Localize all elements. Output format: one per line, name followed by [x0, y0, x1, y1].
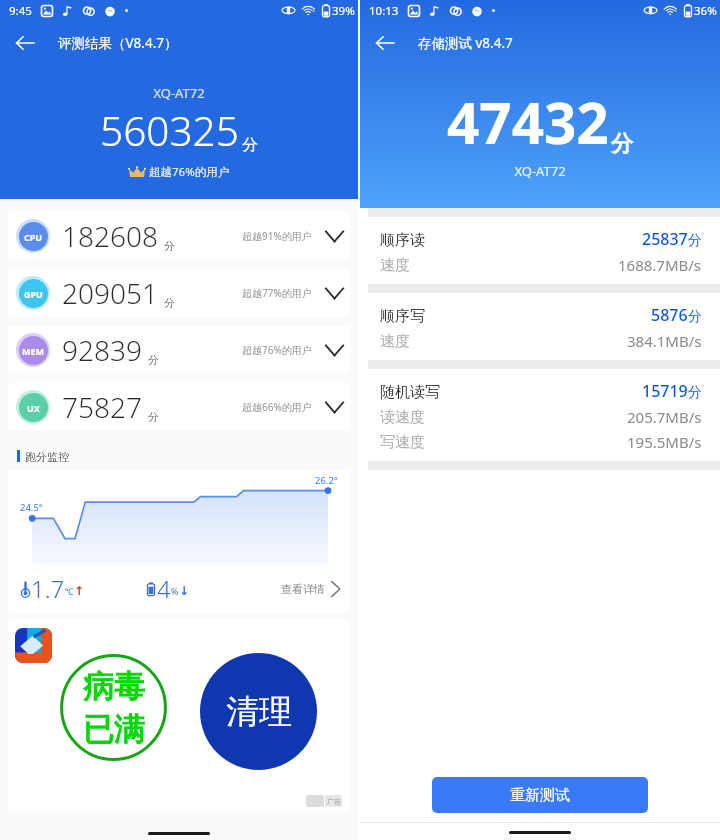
staticText: 分: [688, 384, 702, 402]
staticText: 写速度: [380, 433, 425, 452]
staticText: 195.5MB/s: [627, 432, 702, 452]
staticText: 顺序写: [380, 307, 425, 326]
button[interactable]: Back: [9, 27, 41, 59]
staticText: 182608: [62, 217, 158, 255]
button[interactable]: 重新测试: [432, 777, 648, 813]
staticText: 36%: [694, 3, 717, 19]
staticText: ↓: [179, 584, 190, 598]
staticText: 9:45: [9, 3, 32, 19]
staticText: 评测结果（V8.4.7）: [58, 34, 178, 52]
staticText: 24.5°: [20, 501, 43, 514]
staticText: 读速度: [380, 408, 425, 427]
button[interactable]: 随机读写: [360, 369, 720, 461]
staticText: UX: [27, 402, 40, 414]
staticText: 分: [688, 232, 702, 250]
staticText: ℃: [65, 585, 74, 597]
staticText: 47432: [447, 84, 609, 161]
button[interactable]: Back: [369, 27, 401, 59]
staticText: 26.2°: [315, 474, 338, 487]
staticText: 速度: [380, 256, 410, 275]
staticText: 75827: [62, 388, 142, 426]
button[interactable]: 病毒: [8, 620, 350, 811]
staticText: 分: [688, 308, 702, 326]
staticText: 速度: [380, 332, 410, 351]
staticText: MEM: [22, 345, 45, 357]
staticText: 清理: [226, 691, 292, 733]
staticText: 重新测试: [510, 786, 570, 805]
staticText: 92839: [62, 331, 142, 369]
staticText: 顺序读: [380, 231, 425, 250]
staticText: 分: [164, 239, 175, 253]
staticText: 存储测试 v8.4.7: [418, 34, 513, 52]
staticText: 5876: [651, 304, 688, 326]
staticText: 查看详情: [281, 582, 325, 596]
staticText: 随机读写: [380, 383, 440, 402]
staticText: 超越77%的用户: [242, 286, 312, 300]
staticText: 209051: [62, 274, 158, 312]
staticText: 10:13: [369, 3, 399, 19]
staticText: XQ-AT72: [0, 84, 358, 102]
staticText: %: [171, 585, 179, 597]
button[interactable]: 顺序读: [360, 217, 720, 284]
staticText: ↑: [74, 584, 85, 598]
staticText: 4: [157, 572, 171, 605]
staticText: 分: [148, 353, 159, 367]
staticText: 病毒: [83, 667, 145, 706]
staticText: 分: [164, 296, 175, 310]
button[interactable]: 顺序写: [360, 293, 720, 360]
button[interactable]: 查看详情: [281, 580, 344, 598]
staticText: 1.7: [31, 572, 65, 605]
button[interactable]: MEM: [8, 326, 350, 373]
staticText: 已满: [83, 710, 145, 749]
button[interactable]: CPU: [8, 212, 350, 259]
staticText: 39%: [332, 3, 355, 19]
staticText: 广告: [327, 797, 341, 806]
staticText: XQ-AT72: [360, 162, 720, 180]
staticText: 分: [242, 135, 258, 155]
staticText: 超越91%的用户: [242, 229, 312, 243]
staticText: 超越66%的用户: [242, 400, 312, 414]
staticText: 超越76%的用户: [149, 164, 230, 180]
staticText: 分: [148, 410, 159, 424]
staticText: 1688.7MB/s: [618, 255, 702, 275]
staticText: CPU: [24, 231, 43, 243]
staticText: 384.1MB/s: [627, 331, 702, 351]
staticText: 15719: [642, 380, 688, 402]
staticText: 560325: [100, 103, 239, 158]
button[interactable]: UX: [8, 383, 350, 430]
staticText: 超越76%的用户: [242, 343, 312, 357]
staticText: GPU: [24, 288, 43, 300]
staticText: 跑分监控: [25, 450, 69, 462]
staticText: 分: [611, 130, 633, 158]
staticText: 25837: [642, 228, 688, 250]
staticText: 205.7MB/s: [627, 407, 702, 427]
button[interactable]: GPU: [8, 269, 350, 316]
